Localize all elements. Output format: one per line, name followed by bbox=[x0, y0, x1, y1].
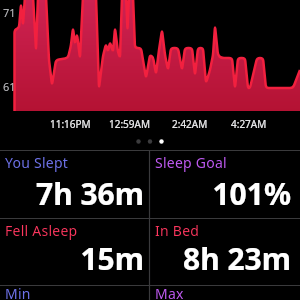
staticText: 7h 36m bbox=[0, 173, 144, 300]
staticText: 8h 23m bbox=[0, 238, 291, 300]
staticText: 4:27AM bbox=[231, 117, 267, 131]
staticText: In Bed bbox=[155, 221, 200, 240]
staticText: 71 bbox=[3, 5, 16, 20]
button[interactable] bbox=[150, 151, 300, 218]
staticText: 12:59AM bbox=[109, 117, 151, 131]
button[interactable] bbox=[0, 286, 149, 300]
button[interactable] bbox=[0, 151, 149, 218]
staticText: Max bbox=[155, 284, 184, 300]
staticText: 2:42AM bbox=[172, 117, 208, 131]
button[interactable] bbox=[150, 219, 300, 285]
staticText: 101% bbox=[0, 173, 291, 300]
staticText: Sleep Goal bbox=[155, 153, 227, 172]
staticText: Min bbox=[5, 284, 31, 300]
staticText: Fell Asleep bbox=[5, 221, 78, 240]
button[interactable] bbox=[150, 286, 300, 300]
staticText: 11:16PM bbox=[50, 117, 91, 131]
button[interactable] bbox=[0, 219, 149, 285]
staticText: You Slept bbox=[5, 153, 69, 172]
staticText: 61 bbox=[3, 79, 16, 94]
staticText: 15m bbox=[0, 238, 144, 300]
